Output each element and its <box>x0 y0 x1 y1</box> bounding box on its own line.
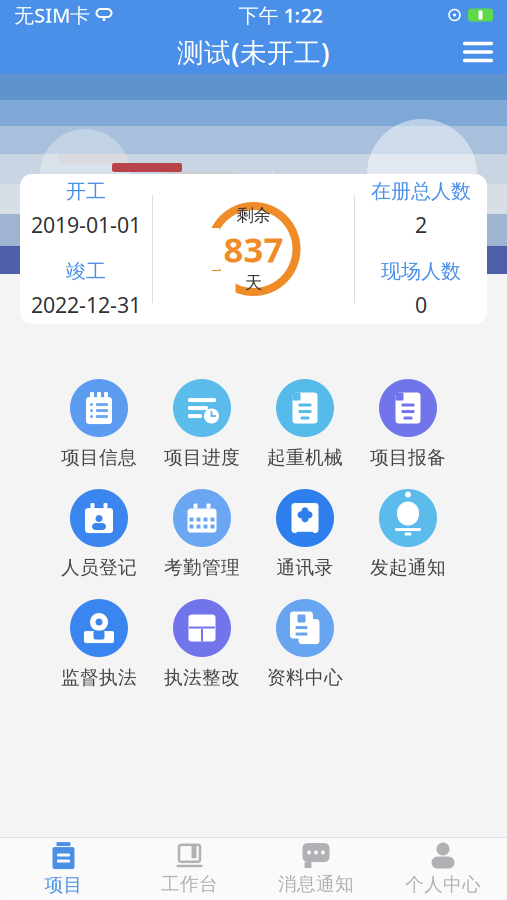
staticText: 开工 <box>66 179 106 204</box>
staticText: 837 <box>223 226 283 272</box>
button[interactable]: 通讯录 <box>253 486 356 582</box>
staticText: 2022-12-31 <box>31 291 141 319</box>
staticText: 天 <box>245 272 262 293</box>
button[interactable]: 菜单 <box>449 32 507 72</box>
staticText: 监督执法 <box>61 666 137 689</box>
staticText: 通讯录 <box>276 556 333 579</box>
button[interactable]: 项目 <box>0 839 126 899</box>
staticText: 消息通知 <box>278 872 354 895</box>
staticText: 无SIM卡 <box>14 2 90 28</box>
staticText: 人员登记 <box>61 556 137 579</box>
button[interactable]: 资料中心 <box>253 596 356 692</box>
staticText: 0 <box>415 291 427 319</box>
button[interactable]: 起重机械 <box>253 376 356 472</box>
staticText: 2019-01-01 <box>31 211 141 239</box>
staticText: 现场人数 <box>381 259 461 284</box>
button[interactable]: 人员登记 <box>47 486 150 582</box>
staticText: 资料中心 <box>267 666 343 689</box>
button[interactable]: 消息通知 <box>252 839 379 899</box>
button[interactable]: 项目信息 <box>47 376 150 472</box>
staticText: 2 <box>415 211 427 239</box>
staticText: 工作台 <box>161 872 218 895</box>
button[interactable]: 项目进度 <box>150 376 253 472</box>
staticText: 项目 <box>44 873 82 896</box>
button[interactable]: 个人中心 <box>379 839 506 899</box>
button[interactable]: 监督执法 <box>47 596 150 692</box>
staticText: 起重机械 <box>267 446 343 469</box>
button[interactable]: 执法整改 <box>150 596 253 692</box>
staticText: 剩余 <box>236 205 270 226</box>
staticText: 考勤管理 <box>164 556 240 579</box>
staticText: 测试(未开工) <box>177 34 330 70</box>
button[interactable]: 考勤管理 <box>150 486 253 582</box>
staticText: 个人中心 <box>405 873 481 896</box>
staticText: 执法整改 <box>164 666 240 689</box>
staticText: 项目报备 <box>370 446 446 469</box>
button[interactable]: 工作台 <box>126 839 252 899</box>
button[interactable]: 发起通知 <box>356 486 459 582</box>
staticText: 项目信息 <box>61 446 137 469</box>
staticText: 项目进度 <box>164 446 240 469</box>
staticText: 发起通知 <box>370 556 446 579</box>
staticText: 下午 1:22 <box>238 2 322 28</box>
button[interactable]: 项目报备 <box>356 376 459 472</box>
staticText: 竣工 <box>66 259 106 284</box>
staticText: 在册总人数 <box>371 179 471 204</box>
